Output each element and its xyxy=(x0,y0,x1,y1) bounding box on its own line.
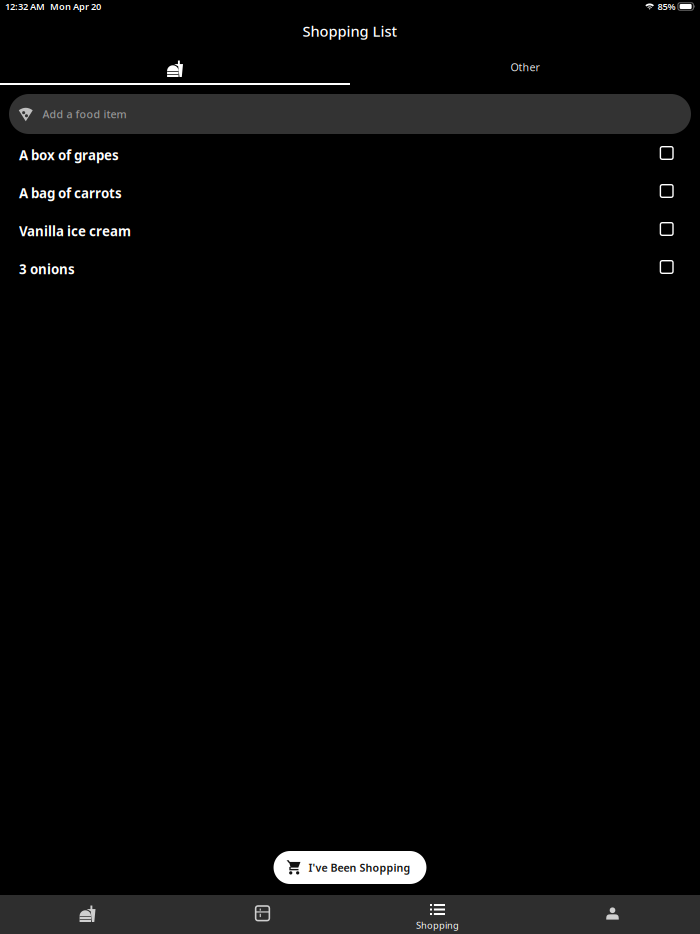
button[interactable]: Fridge xyxy=(175,895,350,934)
staticText: I've Been Shopping xyxy=(308,860,410,875)
button[interactable]: Other xyxy=(350,49,700,85)
button[interactable]: 3 onions xyxy=(0,250,700,288)
staticText: A bag of carrots xyxy=(19,184,122,202)
button[interactable]: Profile xyxy=(525,895,700,934)
staticText: Vanilla ice cream xyxy=(19,222,131,240)
button[interactable]: Add a food item xyxy=(9,94,691,134)
button[interactable]: Food xyxy=(0,49,350,85)
staticText: 3 onions xyxy=(19,260,75,278)
staticText: Shopping List xyxy=(302,21,397,41)
staticText: 85% xyxy=(657,0,675,13)
staticText: Shopping xyxy=(416,919,459,931)
staticText: A box of grapes xyxy=(19,146,119,164)
button[interactable]: I've Been Shopping xyxy=(274,851,426,884)
button[interactable]: Shopping xyxy=(350,895,525,934)
button[interactable]: Food xyxy=(0,895,175,934)
staticText: Other xyxy=(510,60,539,74)
staticText: 12:32 AM xyxy=(5,0,45,13)
button[interactable]: A box of grapes xyxy=(0,136,700,174)
staticText: Add a food item xyxy=(42,107,126,121)
button[interactable]: Vanilla ice cream xyxy=(0,212,700,250)
button[interactable]: A bag of carrots xyxy=(0,174,700,212)
staticText: Mon Apr 20 xyxy=(50,0,101,13)
